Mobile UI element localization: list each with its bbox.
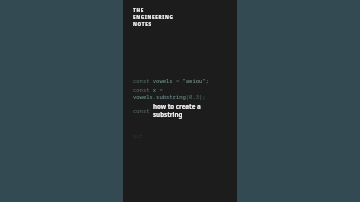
staticText: how to create a substring xyxy=(153,102,231,118)
staticText: const x = vowels.substring(0,3); xyxy=(133,86,231,100)
staticText: NOTES xyxy=(133,21,152,27)
staticText: const xyxy=(133,107,153,114)
staticText: THE xyxy=(133,7,144,13)
button[interactable]: THE xyxy=(133,7,174,27)
button[interactable]: THE xyxy=(123,0,237,202)
staticText: ENGINEERING xyxy=(133,14,174,20)
staticText: const vowels = "aeiou"; xyxy=(133,77,209,84)
staticText: out xyxy=(133,132,143,139)
